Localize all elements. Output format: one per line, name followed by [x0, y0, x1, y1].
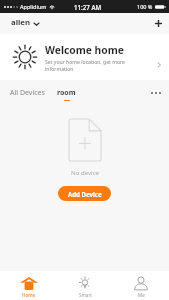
- staticText: Me: [138, 292, 145, 298]
- staticText: Applidium: [20, 3, 47, 10]
- button[interactable]: Welcome home: [0, 34, 169, 80]
- button[interactable]: More options: [149, 88, 163, 98]
- button[interactable]: room: [54, 86, 79, 103]
- staticText: Home: [22, 292, 36, 298]
- button[interactable]: Add device: [149, 14, 167, 32]
- button[interactable]: Me: [113, 271, 169, 300]
- staticText: allen: [11, 17, 31, 28]
- staticText: 11:27 AM: [74, 3, 102, 11]
- staticText: Set your home location, get more informa…: [45, 59, 153, 72]
- button[interactable]: All Devices: [7, 86, 48, 100]
- button[interactable]: allen: [11, 17, 39, 28]
- staticText: room: [57, 88, 76, 98]
- staticText: No device: [71, 168, 99, 176]
- staticText: 100 %: [137, 3, 153, 10]
- button[interactable]: Smart: [57, 271, 113, 300]
- staticText: Smart: [79, 292, 92, 298]
- button[interactable]: Home: [0, 271, 57, 300]
- staticText: Add Device: [68, 190, 102, 198]
- staticText: Welcome home: [45, 43, 124, 57]
- button[interactable]: Add Device: [58, 186, 111, 201]
- staticText: All Devices: [10, 88, 45, 98]
